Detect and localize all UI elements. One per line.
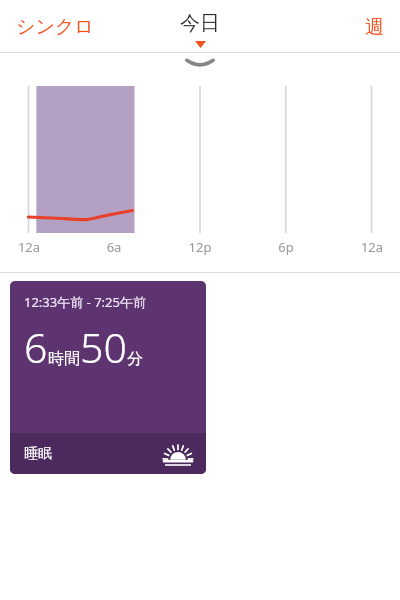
staticText: 6 [24, 319, 48, 375]
staticText: 今日 [180, 11, 220, 36]
staticText: 分 [127, 349, 143, 369]
staticText: 時間 [48, 349, 80, 369]
button[interactable]: 12:33午前 - 7:25午前 [10, 281, 206, 474]
staticText: 6a [90, 238, 138, 256]
other: Sunrise [160, 441, 196, 467]
staticText: 12a [5, 238, 53, 256]
button[interactable]: 週 [357, 7, 392, 47]
staticText: 6p [262, 238, 310, 256]
staticText: 12p [176, 238, 224, 256]
button[interactable]: シンクロ [8, 7, 102, 47]
other: Collapse [185, 59, 215, 68]
staticText: 睡眠 [24, 445, 52, 463]
staticText: シンクロ [16, 15, 94, 39]
staticText: 12a [348, 238, 396, 256]
button[interactable]: 今日 [168, 7, 232, 40]
staticText: 12:33午前 - 7:25午前 [24, 293, 146, 311]
staticText: 週 [365, 15, 384, 39]
staticText: 50 [80, 319, 127, 375]
